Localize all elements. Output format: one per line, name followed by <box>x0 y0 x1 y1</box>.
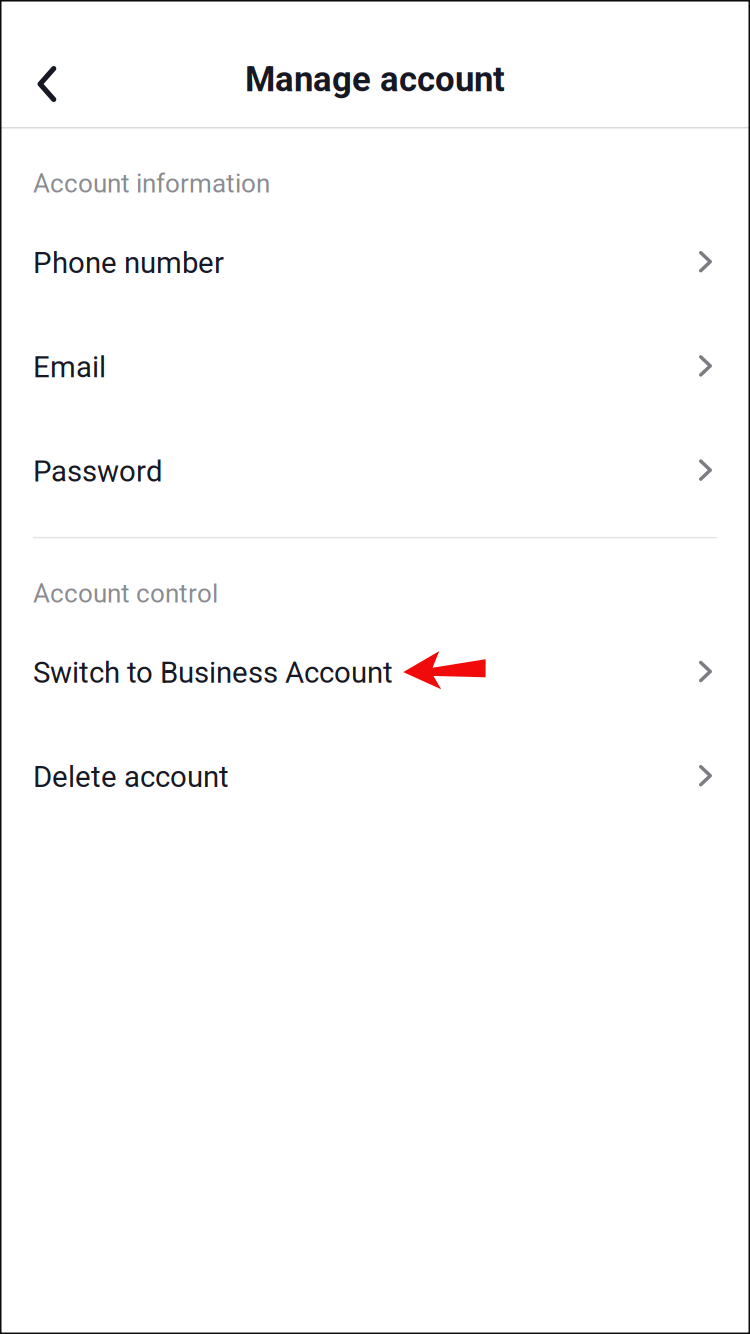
button[interactable]: Delete account <box>0 725 750 829</box>
button[interactable]: Phone number <box>0 211 750 315</box>
staticText: Password <box>33 454 163 489</box>
staticText: Account control <box>33 578 218 609</box>
staticText: Delete account <box>33 760 229 794</box>
button[interactable]: Password <box>0 419 750 523</box>
button[interactable]: Back <box>17 54 77 114</box>
staticText: Manage account <box>245 59 505 100</box>
button[interactable]: Email <box>0 315 750 419</box>
staticText: Phone number <box>33 246 224 280</box>
button[interactable]: Switch to Business Account <box>0 621 750 725</box>
staticText: Email <box>33 350 106 384</box>
staticText: Account information <box>33 168 270 199</box>
staticText: Switch to Business Account <box>33 656 393 690</box>
